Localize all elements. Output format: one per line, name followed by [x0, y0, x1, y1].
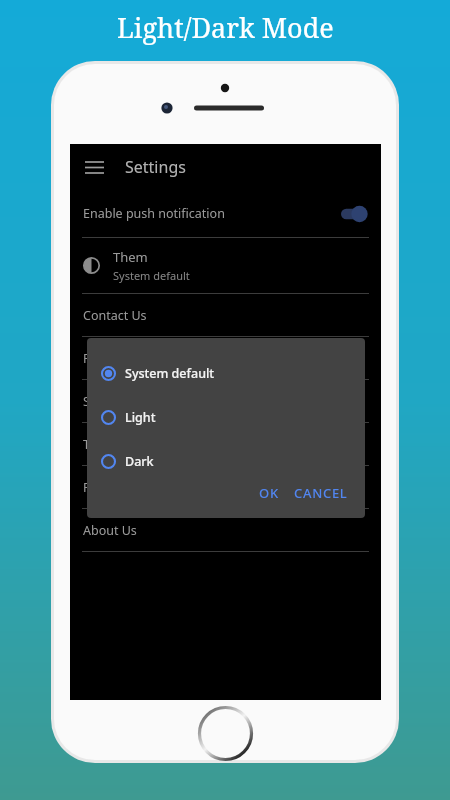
staticText: Privacy Policy — [83, 479, 162, 496]
staticText: OK — [259, 484, 279, 502]
staticText: CANCEL — [294, 484, 348, 502]
staticText: Enable push notification — [83, 205, 225, 222]
button[interactable]: Dark — [87, 449, 365, 473]
button[interactable]: About Us — [70, 509, 381, 551]
button[interactable]: Light — [87, 405, 365, 429]
button[interactable]: Privacy Policy — [70, 466, 381, 508]
staticText: Terms of Use — [83, 436, 160, 453]
staticText: Share App — [83, 393, 144, 410]
staticText: System default — [113, 268, 190, 283]
button[interactable]: Share App — [70, 380, 381, 422]
staticText: Contact Us — [83, 307, 147, 324]
staticText: Light/Dark Mode — [117, 9, 334, 46]
button[interactable]: System default — [87, 361, 365, 385]
staticText: Light — [125, 409, 156, 426]
staticText: Dark — [125, 453, 154, 470]
button[interactable]: CANCEL — [291, 479, 351, 507]
staticText: About Us — [83, 522, 137, 539]
staticText: Them — [113, 248, 148, 266]
button[interactable]: Open navigation menu — [78, 151, 110, 183]
button[interactable]: Enable push notification — [70, 190, 381, 237]
staticText: Rate Us — [83, 350, 128, 367]
button[interactable]: Them — [70, 238, 381, 293]
button[interactable]: Terms of Use — [70, 423, 381, 465]
staticText: System default — [125, 365, 215, 382]
button[interactable]: Rate Us — [70, 337, 381, 379]
button[interactable]: Contact Us — [70, 294, 381, 336]
staticText: Settings — [125, 156, 186, 178]
button[interactable]: OK — [252, 479, 286, 507]
